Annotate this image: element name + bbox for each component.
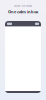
staticText: NOW IN BETA bbox=[14, 4, 32, 7]
staticText: One calm inbox bbox=[8, 9, 38, 14]
